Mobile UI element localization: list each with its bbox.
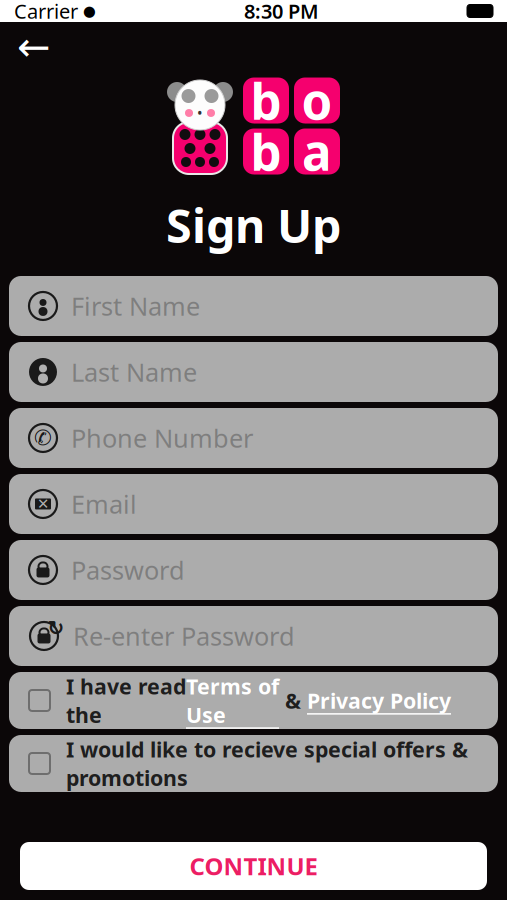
button[interactable]: ↻: [9, 606, 498, 666]
staticText: Phone Number: [71, 421, 253, 455]
button[interactable]: ✕: [9, 474, 498, 534]
staticText: ✕: [37, 496, 49, 512]
staticText: I have read the: [66, 672, 186, 729]
staticText: 8:30 PM: [244, 0, 319, 24]
button[interactable]: I would like to recieve special offers &…: [9, 735, 498, 792]
staticText: &: [279, 686, 307, 715]
button[interactable]: Password: [9, 540, 498, 600]
staticText: Email: [71, 487, 137, 521]
staticText: ←: [17, 24, 51, 70]
staticText: ●: [78, 3, 96, 19]
button[interactable]: CONTINUE: [20, 842, 487, 890]
button[interactable]: ✆: [9, 408, 498, 468]
staticText: Carrier: [14, 0, 78, 24]
staticText: Re-enter Password: [73, 619, 295, 653]
button[interactable]: First Name: [9, 276, 498, 336]
button[interactable]: I have read the: [9, 672, 498, 729]
staticText: •: [197, 105, 202, 121]
staticText: Terms of Use: [186, 672, 279, 729]
staticText: b: [250, 68, 281, 133]
staticText: ↻: [47, 617, 64, 639]
staticText: ✆: [34, 426, 52, 450]
staticText: I would like to recieve special offers &…: [66, 735, 468, 792]
staticText: CONTINUE: [189, 850, 317, 882]
staticText: Password: [71, 553, 185, 587]
button[interactable]: Back: [12, 25, 56, 69]
staticText: a: [302, 119, 332, 184]
staticText: b: [250, 119, 281, 184]
staticText: First Name: [71, 289, 200, 323]
staticText: Last Name: [71, 355, 197, 389]
staticText: o: [301, 68, 332, 133]
button[interactable]: Last Name: [9, 342, 498, 402]
staticText: Privacy Policy: [307, 686, 451, 715]
staticText: Sign Up: [166, 194, 341, 256]
